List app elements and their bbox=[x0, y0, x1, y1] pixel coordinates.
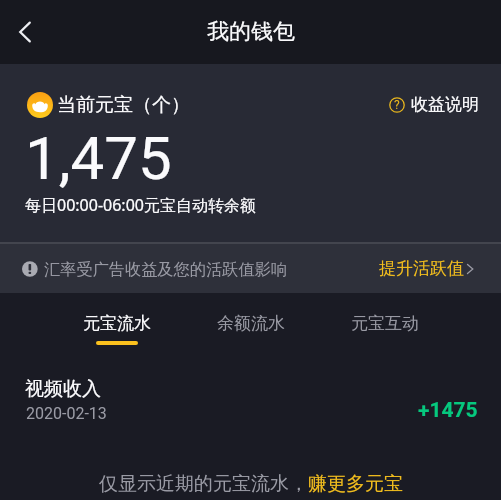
staticText: +1475 bbox=[418, 398, 478, 423]
staticText: 每日00:00-06:00元宝自动转余额 bbox=[25, 194, 256, 216]
button[interactable]: 元宝流水 bbox=[50, 293, 184, 353]
staticText: 我的钱包 bbox=[207, 18, 295, 46]
button[interactable]: 余额流水 bbox=[184, 293, 318, 353]
staticText: 仅显示近期的元宝流水， bbox=[99, 472, 308, 496]
button[interactable]: 视频收入 bbox=[0, 377, 501, 431]
staticText: 元宝流水 bbox=[83, 313, 151, 334]
staticText: 收益说明 bbox=[411, 94, 479, 115]
staticText: 提升活跃值 bbox=[379, 258, 464, 279]
staticText: 汇率受广告收益及您的活跃值影响 bbox=[44, 259, 287, 279]
staticText: 2020-02-13 bbox=[26, 404, 107, 423]
staticText: 视频收入 bbox=[25, 377, 101, 401]
staticText: ? bbox=[394, 98, 400, 112]
button[interactable]: Back bbox=[2, 9, 48, 55]
staticText: 1,475 bbox=[25, 123, 172, 193]
button[interactable]: 元宝互动 bbox=[318, 293, 452, 353]
button[interactable]: 汇率受广告收益及您的活跃值影响 bbox=[0, 244, 501, 293]
staticText: 当前元宝（个） bbox=[57, 93, 190, 117]
staticText: 余额流水 bbox=[217, 313, 285, 334]
button[interactable]: ? bbox=[389, 90, 479, 119]
button[interactable]: 赚更多元宝 bbox=[308, 472, 403, 496]
staticText: 元宝互动 bbox=[351, 313, 419, 334]
